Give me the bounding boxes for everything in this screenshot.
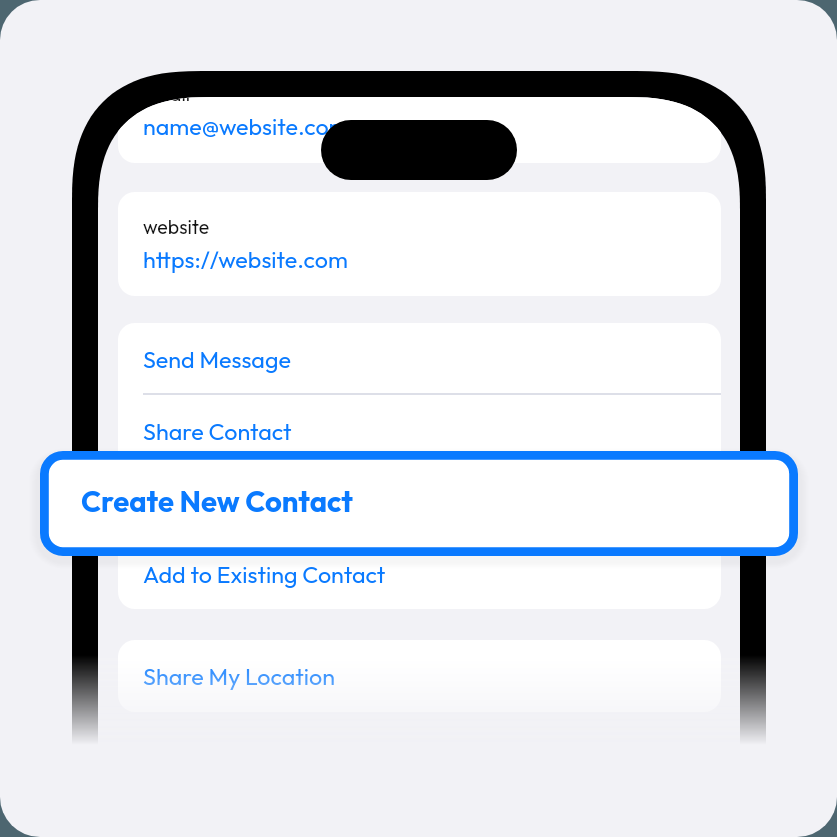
staticText: Send Message xyxy=(143,345,291,374)
staticText: Share Contact xyxy=(143,417,292,446)
button[interactable]: website xyxy=(118,192,721,296)
staticText: email xyxy=(143,97,191,106)
staticText: https://website.com xyxy=(143,245,348,274)
staticText: Add to Existing Contact xyxy=(143,560,386,589)
staticText: website xyxy=(143,214,210,239)
button[interactable]: Share Contact xyxy=(118,395,721,467)
button[interactable]: Share My Location xyxy=(118,640,721,712)
staticText: Share My Location xyxy=(143,662,335,691)
staticText: name@website.com xyxy=(143,112,349,141)
button[interactable]: Create New Contact xyxy=(40,451,798,556)
button[interactable]: Create New Contact xyxy=(118,467,721,539)
button[interactable]: Send Message xyxy=(118,323,721,395)
staticText: Create New Contact xyxy=(81,483,353,520)
staticText: Create New Contact xyxy=(143,489,354,518)
button[interactable]: email xyxy=(118,97,721,163)
button[interactable]: Add to Existing Contact xyxy=(118,539,721,609)
